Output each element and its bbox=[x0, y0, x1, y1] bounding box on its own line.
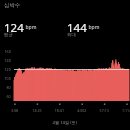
button[interactable]: Heart rate detail chart bbox=[0, 0, 130, 130]
